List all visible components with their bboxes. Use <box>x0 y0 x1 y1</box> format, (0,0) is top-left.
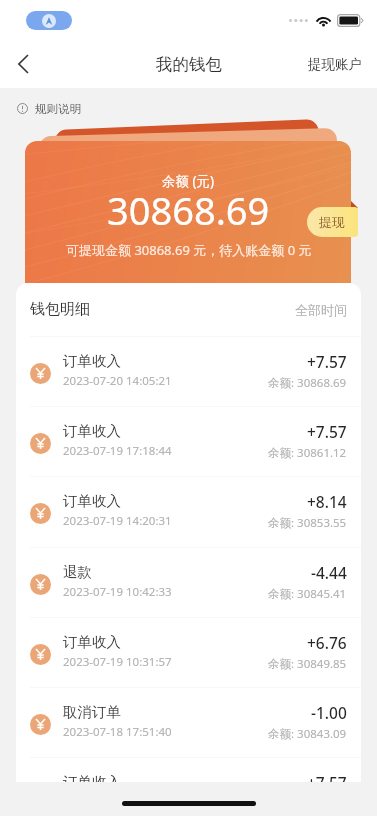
staticText: +7.57 <box>307 351 347 372</box>
staticText: +8.14 <box>307 491 347 512</box>
staticText: 2023-07-19 14:20:31 <box>63 513 172 529</box>
staticText: 我的钱包 <box>156 54 222 75</box>
button[interactable]: 订单收入 <box>16 617 361 687</box>
staticText: -1.00 <box>311 702 347 723</box>
staticText: 2023-07-18 17:51:40 <box>63 724 172 740</box>
staticText: +7.57 <box>307 772 347 782</box>
staticText: 钱包明细 <box>30 300 90 319</box>
button[interactable]: 取消订单 <box>16 687 361 757</box>
staticText: 取消订单 <box>63 703 121 721</box>
staticText: 30868.69 <box>107 184 270 236</box>
staticText: 余额 (元) <box>162 172 215 190</box>
button[interactable]: 提现账户 <box>294 44 377 85</box>
button[interactable]: 订单收入 <box>16 476 361 546</box>
staticText: +6.76 <box>307 632 347 653</box>
button[interactable]: Back <box>0 41 46 87</box>
staticText: 订单收入 <box>63 492 121 510</box>
staticText: 规则说明 <box>35 102 81 116</box>
staticText: 余额: 30861.12 <box>268 445 347 461</box>
button[interactable]: 订单收入 <box>16 336 361 406</box>
button[interactable]: 订单收入 <box>16 406 361 476</box>
staticText: 余额: 30845.41 <box>268 586 347 602</box>
staticText: 2023-07-20 14:05:21 <box>63 373 172 389</box>
staticText: 可提现金额 30868.69 元，待入账金额 0 元 <box>66 241 312 259</box>
staticText: 提现 <box>319 214 345 230</box>
staticText: 余额: 30849.85 <box>268 656 347 672</box>
staticText: 订单收入 <box>63 422 121 440</box>
staticText: 订单收入 <box>63 352 121 370</box>
staticText: 订单收入 <box>63 773 121 782</box>
button[interactable]: 全部时间 <box>295 302 347 318</box>
staticText: 2023-07-19 10:42:33 <box>63 584 172 600</box>
button[interactable]: 提现 <box>307 207 358 237</box>
staticText: +7.57 <box>307 421 347 442</box>
staticText: 余额: 30853.55 <box>268 515 347 531</box>
staticText: -4.44 <box>311 562 347 583</box>
staticText: 全部时间 <box>295 302 347 318</box>
staticText: 订单收入 <box>63 633 121 651</box>
staticText: 提现账户 <box>308 56 362 73</box>
staticText: 2023-07-19 10:31:57 <box>63 654 172 670</box>
staticText: 余额: 30868.69 <box>268 375 347 391</box>
button[interactable]: 订单收入 <box>16 757 361 782</box>
staticText: 余额: 30843.09 <box>268 726 347 742</box>
button[interactable]: 退款 <box>16 547 361 617</box>
staticText: 退款 <box>63 563 92 581</box>
staticText: 2023-07-19 17:18:44 <box>63 443 172 459</box>
